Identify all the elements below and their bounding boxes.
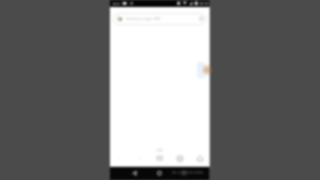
button[interactable]: Home screen [149,167,170,180]
button[interactable]: Back [111,150,129,167]
button[interactable]: Navigate back [124,167,145,180]
staticText: 6:12 [200,1,208,6]
button[interactable]: Home [190,150,209,167]
staticText: Jeet [113,1,121,6]
staticText: REC SCREEN RECORDER [172,171,204,175]
button[interactable]: Search or type URL [113,14,206,25]
button[interactable]: Switch tabs [170,150,189,167]
button[interactable]: Recent apps [175,167,196,180]
button[interactable]: Menu [150,150,169,167]
button[interactable]: Forward [130,150,149,167]
staticText: Search or type URL [126,16,161,21]
button[interactable]: Voice search [198,14,206,25]
